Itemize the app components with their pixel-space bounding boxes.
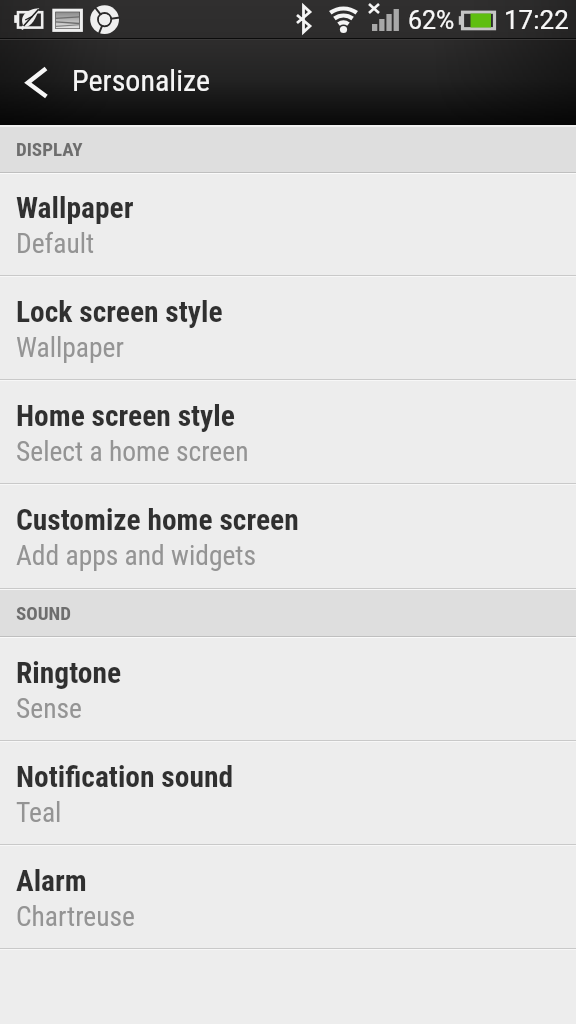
staticText: Sense — [16, 692, 82, 724]
button[interactable]: Alarm — [0, 845, 576, 949]
button[interactable]: Back — [0, 38, 62, 125]
staticText: Teal — [16, 796, 62, 828]
staticText: Personalize — [72, 63, 211, 98]
staticText: Select a home screen — [16, 435, 249, 467]
staticText: SOUND — [16, 602, 71, 624]
staticText: Home screen style — [16, 399, 235, 434]
button[interactable]: Lock screen style — [0, 276, 576, 380]
button[interactable]: Wallpaper — [0, 172, 576, 276]
staticText: 17:22 — [504, 5, 569, 35]
staticText: 62% — [408, 6, 455, 35]
staticText: DISPLAY — [16, 138, 83, 160]
staticText: Notification sound — [16, 760, 234, 795]
staticText: Ringtone — [16, 656, 122, 691]
button[interactable]: Notification sound — [0, 741, 576, 845]
staticText: Default — [16, 227, 95, 259]
staticText: Wallpaper — [16, 331, 124, 363]
staticText: Wallpaper — [16, 191, 134, 226]
staticText: Chartreuse — [16, 900, 135, 932]
staticText: Customize home screen — [16, 503, 299, 538]
staticText: Alarm — [16, 864, 87, 899]
staticText: Lock screen style — [16, 295, 223, 330]
staticText: Add apps and widgets — [16, 539, 257, 571]
button[interactable]: Home screen style — [0, 380, 576, 484]
button[interactable]: Customize home screen — [0, 484, 576, 588]
button[interactable]: Ringtone — [0, 637, 576, 741]
